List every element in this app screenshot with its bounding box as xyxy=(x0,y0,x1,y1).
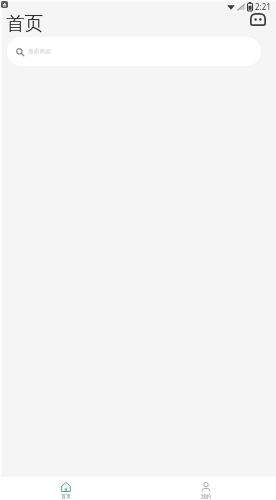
button[interactable]: 首页 xyxy=(0,477,135,500)
button[interactable]: 搜索商品 xyxy=(7,37,261,66)
staticText: 2:21 xyxy=(255,1,271,12)
button[interactable]: Customer service xyxy=(248,9,268,29)
staticText: 首页 xyxy=(61,493,71,499)
staticText: 首页 xyxy=(6,12,43,35)
staticText: 搜索商品 xyxy=(28,48,52,55)
button[interactable]: 我的 xyxy=(137,477,275,500)
staticText: 我的 xyxy=(201,493,211,499)
